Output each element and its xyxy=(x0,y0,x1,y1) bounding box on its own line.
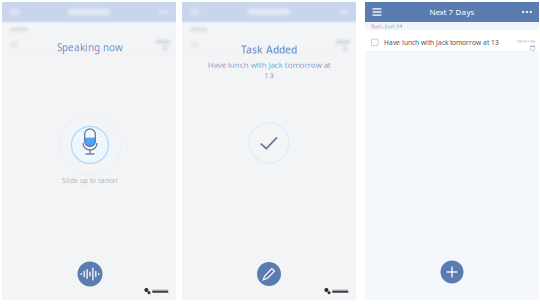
button[interactable]: More options xyxy=(519,4,535,20)
staticText: Task Added xyxy=(241,43,297,56)
staticText: Sun, Jun 14 xyxy=(371,22,402,30)
button[interactable]: Add task xyxy=(440,260,463,283)
staticText: Next 7 Days xyxy=(429,7,474,17)
button[interactable]: Menu xyxy=(369,4,385,20)
staticText: Tomorrow xyxy=(516,38,535,43)
staticText: Slide up to cancel xyxy=(62,176,118,185)
button[interactable]: Edit task xyxy=(257,262,281,286)
button[interactable]: Stop recording xyxy=(77,261,102,286)
staticText: Have lunch with Jack tomorrow at 13 xyxy=(207,60,330,80)
staticText: Have lunch with Jack tomorrow at 13 xyxy=(384,38,499,47)
staticText: Speaking now xyxy=(57,41,123,54)
button[interactable]: Have lunch with Jack tomorrow at 13 xyxy=(365,30,539,51)
